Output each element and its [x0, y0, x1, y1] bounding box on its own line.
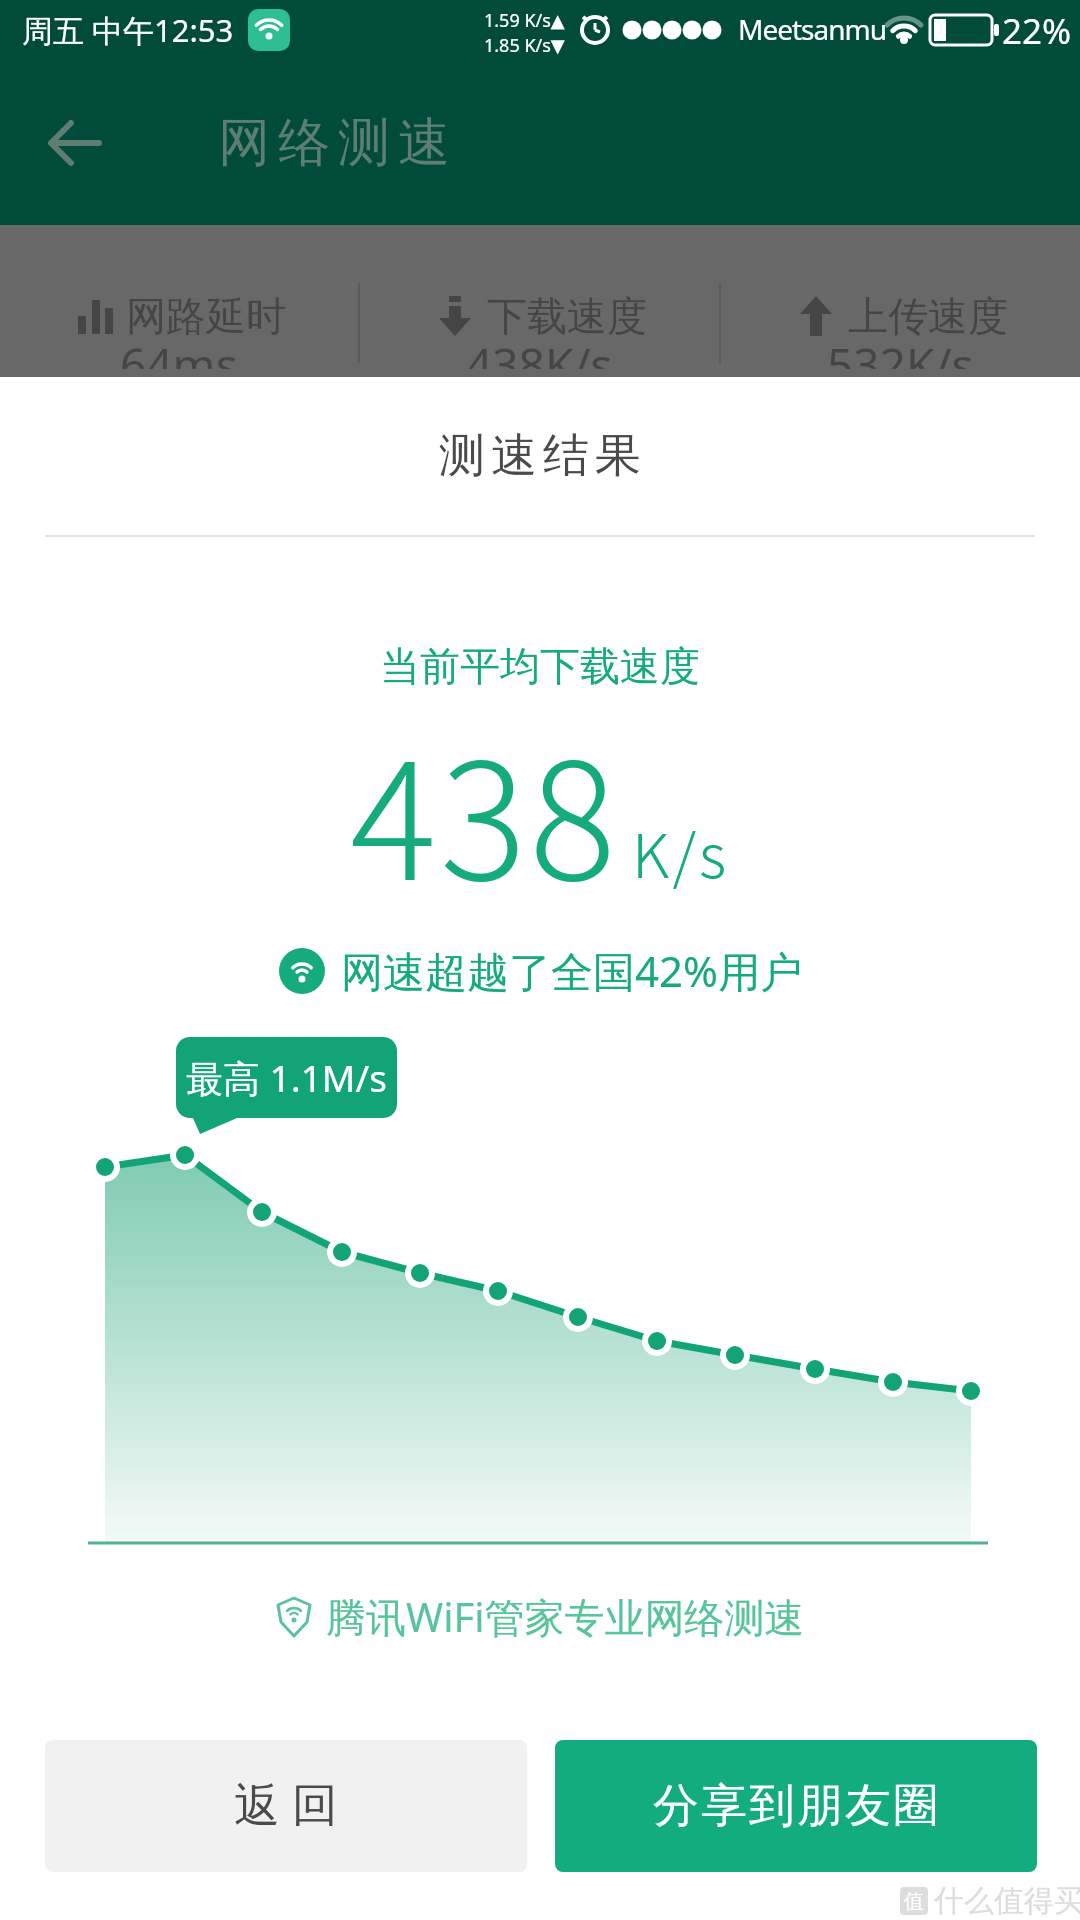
- staticText: Meetsanmu: [738, 10, 886, 48]
- staticText: 532K/s: [827, 333, 974, 369]
- staticText: 网路延时: [126, 291, 286, 341]
- staticText: 上传速度: [848, 291, 1008, 341]
- staticText: 周五 中午12:53: [22, 9, 234, 51]
- staticText: 22%: [1002, 7, 1072, 55]
- staticText: K/s: [632, 808, 730, 895]
- staticText: 网络测速: [214, 110, 454, 176]
- staticText: 当前平均下载速度: [380, 641, 700, 691]
- staticText: 438K/s: [466, 333, 613, 369]
- staticText: 分享到朋友圈: [652, 1777, 940, 1835]
- staticText: 返回: [228, 1777, 344, 1835]
- button[interactable]: 分享到朋友圈: [555, 1740, 1037, 1872]
- staticText: 什么值得买: [934, 1882, 1080, 1920]
- staticText: 腾讯WiFi管家专业网络测速: [326, 1589, 805, 1644]
- staticText: 下载速度: [487, 291, 647, 341]
- staticText: 测速结果: [436, 427, 644, 485]
- staticText: 网速超越了全国42%用户: [341, 942, 802, 999]
- staticText: 最高 1.1M/s: [186, 1052, 387, 1103]
- staticText: 64ms: [120, 333, 238, 369]
- button[interactable]: [40, 108, 110, 178]
- staticText: 1.85 K/s▼: [484, 33, 565, 58]
- button[interactable]: 返回: [45, 1740, 527, 1872]
- staticText: 438: [350, 692, 620, 927]
- staticText: 值: [904, 1889, 924, 1914]
- staticText: 1.59 K/s▲: [484, 8, 565, 33]
